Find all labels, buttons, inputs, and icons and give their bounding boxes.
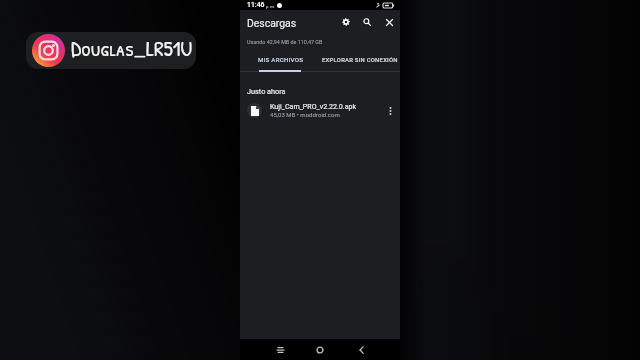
staticText: 11:46 — [247, 1, 265, 9]
button[interactable]: EXPLORAR SIN CONEXIÓN — [322, 56, 398, 63]
button[interactable]: Settings — [337, 13, 355, 31]
button[interactable]: Search — [358, 13, 376, 31]
button[interactable]: MIS ARCHIVOS — [258, 56, 304, 63]
button[interactable]: Recents — [272, 342, 288, 358]
button[interactable]: Back — [353, 342, 369, 358]
staticText: p. m. — [266, 4, 275, 9]
staticText: Douglas_LR51U — [71, 34, 193, 63]
staticText: 45,03 MB • moddroid.com — [270, 111, 340, 118]
button[interactable]: Close — [380, 13, 398, 31]
button[interactable]: Kuji_Cam_PRO_v2.22.0.apk — [240, 99, 400, 122]
button[interactable]: More options — [383, 103, 398, 118]
staticText: Kuji_Cam_PRO_v2.22.0.apk — [270, 102, 357, 110]
staticText: Justo ahora — [247, 87, 286, 96]
staticText: Usando 42,94 MB de 110,47 GB — [247, 39, 323, 45]
staticText: Descargas — [247, 17, 297, 29]
button[interactable]: Home — [312, 342, 328, 358]
